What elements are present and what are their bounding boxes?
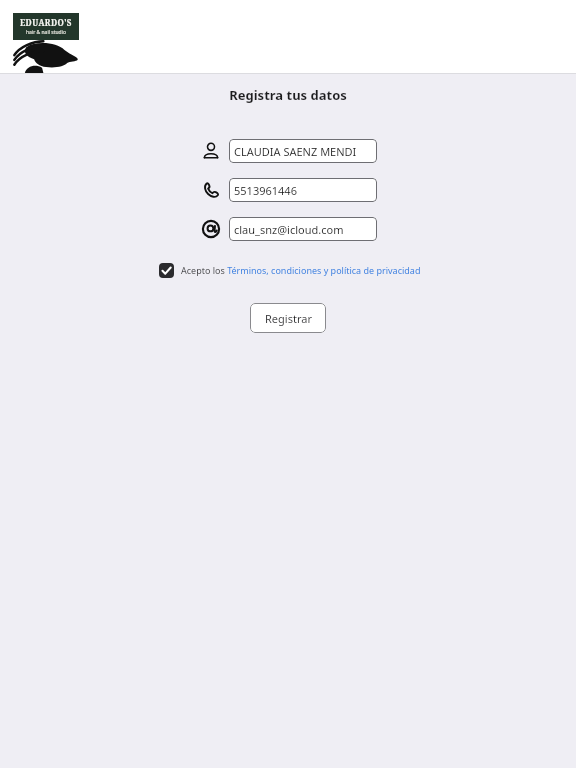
button[interactable]: Acepto los terminos (155, 259, 177, 281)
button[interactable]: clau_snz@icloud.com (229, 217, 377, 241)
staticText: Acepto los Términos, condiciones y polít… (181, 264, 421, 276)
button[interactable]: Acepto los Términos, condiciones y polít… (181, 264, 421, 276)
button[interactable]: Eduardo's logo (13, 13, 79, 73)
staticText: hair & nail studio (26, 29, 66, 36)
button[interactable]: 5513961446 (229, 178, 377, 202)
staticText: 5513961446 (234, 183, 297, 198)
button[interactable]: Registrar (250, 303, 326, 333)
staticText: CLAUDIA SAENZ MENDI (234, 144, 357, 159)
staticText: EDUARDO'S (20, 17, 72, 28)
button[interactable]: CLAUDIA SAENZ MENDI (229, 139, 377, 163)
staticText: Registra tus datos (0, 86, 576, 104)
staticText: clau_snz@icloud.com (234, 222, 344, 237)
staticText: Registrar (265, 311, 312, 326)
